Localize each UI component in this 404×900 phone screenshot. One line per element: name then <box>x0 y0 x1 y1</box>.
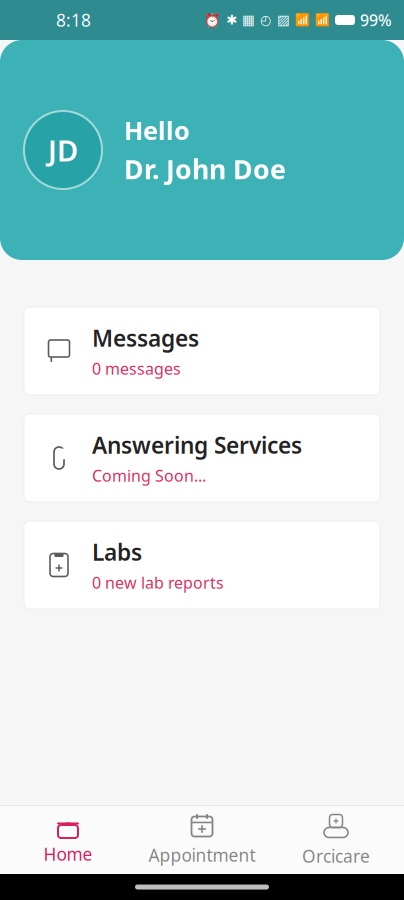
staticText: 8:18 <box>56 8 91 31</box>
staticText: Messages <box>92 323 199 353</box>
staticText: 0 messages <box>92 358 181 379</box>
button[interactable]: Answering Services <box>24 414 380 502</box>
staticText: Hello <box>124 113 190 147</box>
staticText: Coming Soon... <box>92 465 206 486</box>
staticText: Answering Services <box>92 430 302 460</box>
staticText: ⏰ <box>204 12 221 28</box>
staticText: ✱ <box>226 12 237 27</box>
button[interactable]: Home <box>1 809 135 871</box>
staticText: Home <box>43 842 92 865</box>
staticText: 📶 <box>315 13 330 27</box>
staticText: Dr. John Doe <box>124 151 286 186</box>
button[interactable]: Appointment <box>135 809 269 871</box>
staticText: ▨ <box>277 12 290 27</box>
staticText: 📶 <box>295 13 310 27</box>
staticText: JD <box>48 130 78 169</box>
staticText: Labs <box>92 537 142 567</box>
button[interactable]: Labs <box>24 521 380 609</box>
staticText: ◴ <box>260 12 272 27</box>
staticText: 99% <box>360 9 392 31</box>
staticText: 0 new lab reports <box>92 572 224 593</box>
staticText: ▦ <box>242 12 255 27</box>
staticText: Orcicare <box>302 844 370 867</box>
button[interactable]: Messages <box>24 307 380 395</box>
staticText: Appointment <box>148 843 255 866</box>
button[interactable]: Orcicare <box>269 809 403 871</box>
